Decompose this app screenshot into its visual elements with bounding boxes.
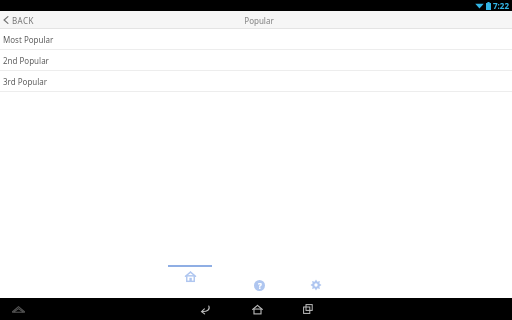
button[interactable]: Recent apps <box>298 299 318 319</box>
button[interactable]: Help <box>248 276 270 294</box>
button[interactable]: 2nd Popular <box>0 50 512 70</box>
button[interactable]: Settings <box>305 276 327 294</box>
staticText: Most Popular <box>3 34 54 45</box>
staticText: 3rd Popular <box>3 76 48 87</box>
button[interactable]: Back <box>195 299 215 319</box>
staticText: 7:22 <box>493 0 509 11</box>
button[interactable]: BACK <box>0 11 40 29</box>
button[interactable]: Most Popular <box>0 29 512 49</box>
staticText: ? <box>258 280 262 291</box>
staticText: Popular <box>244 15 274 26</box>
button[interactable]: 3rd Popular <box>0 71 512 91</box>
staticText: BACK <box>12 15 34 26</box>
button[interactable]: Menu <box>8 300 28 318</box>
button[interactable]: Home <box>168 265 212 282</box>
button[interactable]: Home <box>247 299 267 319</box>
staticText: 2nd Popular <box>3 55 49 66</box>
